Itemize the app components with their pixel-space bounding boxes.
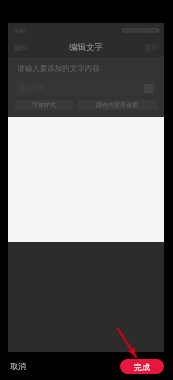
staticText: 完成 [134, 362, 150, 372]
staticText: 9:41 [14, 26, 27, 35]
staticText: 返回 [14, 43, 28, 52]
button[interactable]: 输入文字 [15, 81, 157, 95]
staticText: 更多 [144, 43, 158, 52]
staticText: 编辑文字 [69, 42, 103, 53]
staticText: 颜色与背景设置 [96, 101, 138, 109]
staticText: 输入文字 [19, 84, 45, 92]
button[interactable]: 字体样式 [15, 100, 73, 110]
button[interactable]: 取消 [6, 356, 30, 376]
staticText: 取消 [10, 361, 26, 371]
button[interactable]: 颜色与背景设置 [77, 100, 157, 110]
button[interactable]: 更多 [138, 40, 164, 55]
staticText: 请输入要添加的文字内容 [17, 64, 100, 73]
staticText: 字体样式 [32, 101, 56, 109]
button[interactable]: 完成 [120, 359, 164, 374]
button[interactable]: 返回 [8, 40, 34, 55]
